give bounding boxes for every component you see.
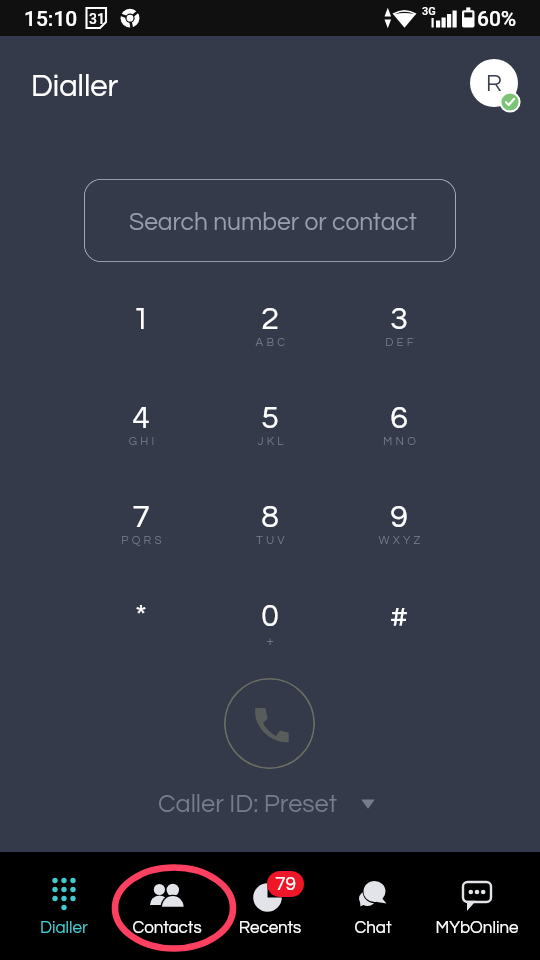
button[interactable]: 4 — [85, 377, 197, 457]
staticText: JKL — [216, 436, 328, 448]
staticText: 8 — [214, 501, 326, 534]
staticText: 9 — [343, 501, 455, 534]
button[interactable]: 7 — [85, 476, 197, 556]
staticText: 2 — [214, 303, 326, 336]
button[interactable]: MYbOnline — [426, 852, 528, 960]
staticText: Recents — [219, 919, 321, 937]
staticText: R — [486, 71, 503, 96]
staticText: 4 — [85, 402, 197, 435]
button[interactable]: Profile — [470, 59, 522, 111]
staticText: 3G — [422, 5, 436, 18]
button[interactable]: Dialler — [13, 852, 115, 960]
button[interactable]: Chat — [322, 852, 424, 960]
staticText: WXYZ — [345, 535, 457, 547]
staticText: 7 — [85, 501, 197, 534]
staticText: + — [214, 634, 326, 648]
button[interactable]: Search number or contact — [84, 179, 456, 262]
staticText: 3 — [343, 303, 455, 336]
staticText: Contacts — [116, 919, 218, 937]
staticText: * — [85, 600, 197, 633]
staticText: 15:10 — [24, 7, 78, 32]
staticText: 6 — [343, 402, 455, 435]
staticText: MNO — [345, 436, 457, 448]
staticText: Chat — [322, 919, 424, 937]
button[interactable]: 2 — [214, 278, 326, 358]
staticText: # — [343, 600, 455, 633]
staticText: 60% — [477, 7, 517, 32]
button[interactable]: 1 — [85, 278, 197, 358]
staticText: 31 — [89, 11, 105, 27]
staticText: MYbOnline — [426, 919, 528, 937]
staticText: 0 — [214, 600, 326, 633]
button[interactable]: * — [85, 575, 197, 655]
button[interactable]: 0 — [214, 575, 326, 655]
staticText: DEF — [345, 337, 457, 349]
button[interactable]: Caller ID: Preset — [158, 786, 378, 822]
button[interactable]: 5 — [214, 377, 326, 457]
staticText: Dialler — [13, 919, 115, 937]
button[interactable]: 9 — [343, 476, 455, 556]
button[interactable]: 8 — [214, 476, 326, 556]
staticText: Search number or contact — [129, 210, 417, 235]
staticText: PQRS — [87, 535, 199, 547]
staticText: 5 — [214, 402, 326, 435]
staticText: Dialler — [31, 71, 119, 103]
button[interactable]: 6 — [343, 377, 455, 457]
staticText: Caller ID: Preset — [158, 791, 337, 817]
staticText: 1 — [85, 303, 197, 336]
button[interactable]: 79 — [219, 852, 321, 960]
staticText: 79 — [275, 874, 296, 894]
button[interactable]: Call — [224, 678, 315, 769]
staticText: ABC — [216, 337, 328, 349]
staticText: TUV — [216, 535, 328, 547]
staticText: GHI — [87, 436, 199, 448]
button[interactable]: # — [343, 575, 455, 655]
button[interactable]: Contacts — [116, 852, 218, 960]
button[interactable]: 3 — [343, 278, 455, 358]
